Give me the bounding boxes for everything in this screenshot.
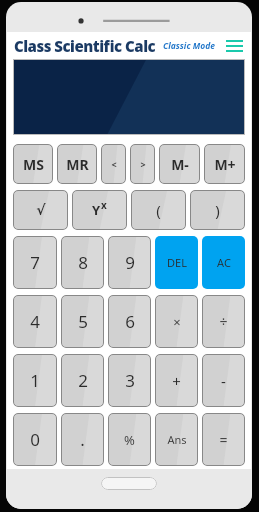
button[interactable]: 6 [108,295,151,348]
button[interactable]: + [155,354,198,407]
button[interactable]: ÷ [202,295,245,348]
staticText: Class Scientific Calc [14,36,156,56]
staticText: x [101,198,107,212]
staticText: Y [92,201,101,219]
staticText: 1 [30,369,40,392]
staticText: 6 [125,310,135,333]
button[interactable]: 7 [13,236,57,289]
button[interactable]: Menu [223,35,245,57]
staticText: 3 [125,369,135,392]
button[interactable]: 9 [108,236,151,289]
button[interactable]: - [202,354,245,407]
staticText: 2 [78,369,88,392]
button[interactable]: 4 [13,295,57,348]
button[interactable]: M+ [204,144,245,184]
button[interactable]: 3 [108,354,151,407]
staticText: . [80,428,85,451]
button[interactable]: Y [72,190,127,230]
button[interactable]: < [101,144,126,184]
staticText: 5 [78,310,88,333]
staticText: M- [171,155,189,174]
staticText: ) [215,200,220,220]
button[interactable]: 1 [13,354,57,407]
staticText: 8 [78,251,88,274]
button[interactable]: . [61,413,104,466]
button[interactable]: AC [202,236,245,289]
button[interactable]: DEL [155,236,198,289]
staticText: 9 [125,251,135,274]
staticText: M+ [214,155,236,174]
staticText: ÷ [219,312,228,331]
staticText: MS [23,155,44,174]
staticText: = [219,430,228,449]
staticText: √ [36,202,46,218]
staticText: < [111,158,117,170]
staticText: - [221,371,226,391]
staticText: 0 [30,428,40,451]
staticText: % [124,431,135,449]
staticText: Ans [167,432,187,447]
button[interactable]: M- [159,144,200,184]
staticText: > [140,158,146,170]
button[interactable]: MR [57,144,97,184]
button[interactable]: ) [190,190,245,230]
button[interactable]: × [155,295,198,348]
staticText: MR [66,155,89,174]
button[interactable]: 0 [13,413,57,466]
button[interactable]: Home [101,477,157,490]
staticText: 4 [30,310,40,333]
staticText: DEL [167,255,187,270]
button[interactable]: ( [131,190,186,230]
button[interactable]: = [202,413,245,466]
button[interactable]: √ [13,190,68,230]
button[interactable]: % [108,413,151,466]
staticText: ( [156,200,161,220]
staticText: AC [217,255,231,270]
staticText: + [172,371,181,391]
staticText: × [173,313,181,331]
button[interactable]: Ans [155,413,198,466]
button[interactable]: 5 [61,295,104,348]
button[interactable]: > [130,144,155,184]
staticText: 7 [30,251,40,274]
staticText: Classic Mode [163,40,215,52]
button[interactable]: MS [13,144,53,184]
button[interactable]: 2 [61,354,104,407]
button[interactable]: 8 [61,236,104,289]
